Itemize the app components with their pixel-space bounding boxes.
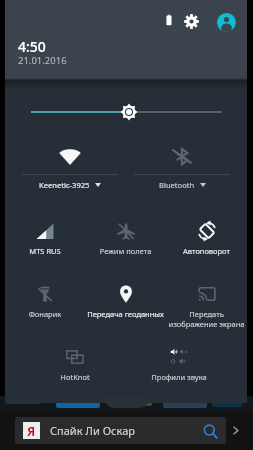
button[interactable]: Search [200,421,220,441]
button[interactable]: Я [15,417,226,444]
button[interactable]: Автоповорот [166,208,247,226]
staticText: HotKnot [31,372,119,382]
staticText: Фонарик [6,309,84,319]
staticText: Режим полета [86,246,165,256]
button[interactable]: Профили звука [134,334,224,352]
staticText: 21.01.2016 [18,54,67,67]
staticText: Спайк Ли Оскар [50,423,135,438]
button[interactable]: Brightness [5,96,247,128]
staticText: Bluetooth [159,180,195,190]
staticText: MTS RUS [6,246,84,256]
button[interactable]: More [226,417,245,444]
button[interactable]: HotKnot [30,334,120,352]
staticText: 4:50 [18,37,46,56]
button[interactable]: Keenetic-3925 [14,133,126,150]
button[interactable]: Bluetooth [126,133,238,150]
staticText: Передача геоданных [86,309,165,319]
button[interactable]: Передача геоданных [85,271,166,289]
button[interactable]: Close quick settings [104,397,150,408]
staticText: Я [27,423,36,439]
staticText: Keenetic-3925 [39,180,90,190]
button[interactable]: Battery [158,9,180,31]
staticText: Передать изображение экрана [167,309,246,329]
staticText: Профили звука [135,372,223,382]
button[interactable]: Передать изображение экрана [166,271,247,291]
button[interactable]: Режим полета [85,208,166,226]
button[interactable]: Settings [180,10,202,32]
button[interactable]: User account [216,12,236,32]
staticText: Автоповорот [167,246,246,256]
button[interactable]: MTS RUS [5,208,85,226]
button[interactable]: Фонарик [5,271,85,289]
